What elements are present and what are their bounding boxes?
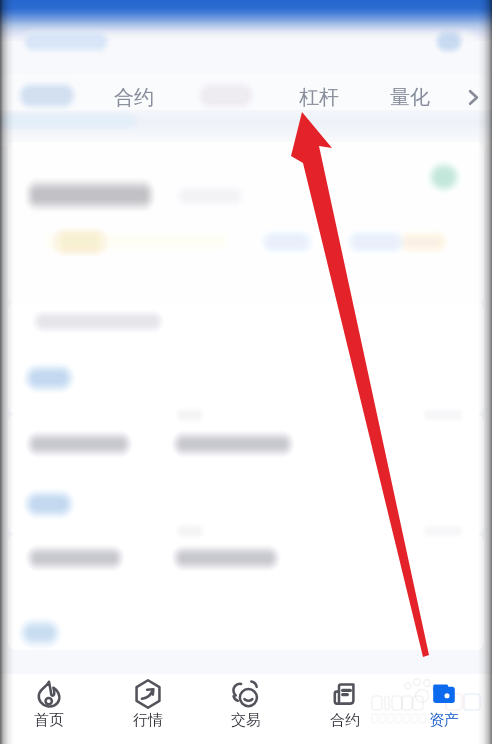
button[interactable]: 标签 xyxy=(0,80,88,114)
button[interactable]: 合约 xyxy=(296,658,393,744)
staticText: 合约 xyxy=(114,85,154,110)
staticText: 杠杆 xyxy=(299,85,339,110)
button[interactable]: 合约 xyxy=(88,80,180,114)
staticText: 首页 xyxy=(34,711,64,730)
button[interactable]: 更多 xyxy=(454,80,492,114)
staticText: 行情 xyxy=(133,711,163,730)
button[interactable]: 杠杆 xyxy=(274,80,364,114)
staticText: 合约 xyxy=(330,711,360,730)
button[interactable]: 标签 xyxy=(180,80,270,114)
staticText: 资产 xyxy=(429,711,459,730)
button[interactable]: 首页 xyxy=(0,658,97,744)
staticText: 量化 xyxy=(390,85,430,110)
button[interactable]: 行情 xyxy=(99,658,196,744)
button[interactable]: 交易 xyxy=(197,658,294,744)
button[interactable]: 量化 xyxy=(366,80,454,114)
staticText: 交易 xyxy=(231,711,261,730)
button[interactable]: 资产 xyxy=(395,658,492,744)
